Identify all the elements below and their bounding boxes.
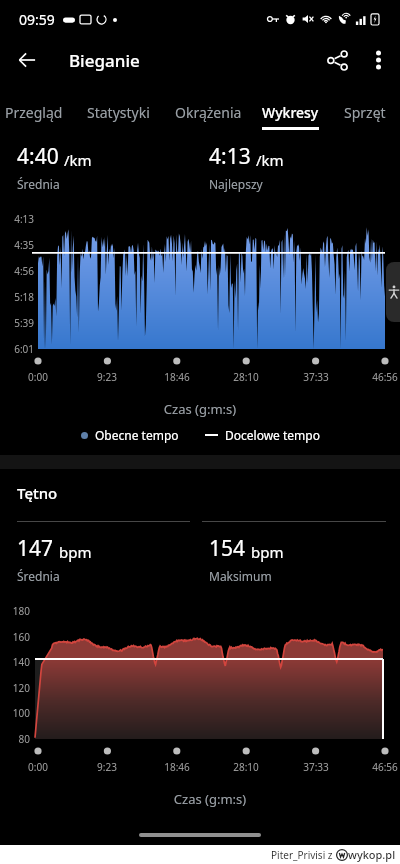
button[interactable]: Share (315, 38, 359, 82)
staticText: 46:56 (361, 370, 400, 384)
staticText: 28:10 (222, 370, 270, 384)
staticText: 0:00 (14, 760, 62, 774)
staticText: Średnia (17, 176, 60, 192)
staticText: 4:35 (2, 238, 34, 252)
staticText: 0:00 (14, 370, 62, 384)
staticText: Czas (g:m:s) (20, 790, 400, 808)
staticText: Wykresy (262, 103, 319, 122)
staticText: Sprzęt (344, 103, 386, 122)
staticText: Najlepszy (209, 176, 263, 192)
staticText: 46:56 (361, 760, 400, 774)
staticText: 9:23 (83, 370, 131, 384)
staticText: Średnia (17, 568, 60, 584)
staticText: Docelowe tempo (225, 427, 320, 443)
staticText: 180 (0, 604, 30, 618)
staticText: /km (256, 150, 284, 170)
button[interactable]: Accessibility (386, 262, 400, 322)
staticText: Czas (g:m:s) (0, 400, 400, 418)
staticText: bpm (59, 542, 92, 562)
staticText: 4:56 (2, 264, 34, 278)
staticText: 154 (209, 534, 246, 563)
staticText: Obecne tempo (95, 427, 179, 443)
staticText: Bieganie (69, 49, 140, 72)
staticText: 37:33 (292, 370, 340, 384)
staticText: 37:33 (292, 760, 340, 774)
staticText: 100 (0, 706, 30, 720)
button[interactable]: Statystyki (76, 94, 160, 130)
button[interactable]: More options (356, 38, 400, 82)
staticText: 09:59 (19, 10, 55, 29)
staticText: bpm (251, 542, 284, 562)
staticText: 4:13 (209, 142, 251, 171)
staticText: 120 (0, 681, 30, 695)
staticText: 147 (17, 534, 54, 563)
staticText: 9:23 (83, 760, 131, 774)
staticText: Tętno (17, 483, 58, 503)
button[interactable]: Przegląd (0, 94, 72, 130)
staticText: 80 (0, 732, 30, 746)
staticText: 140 (0, 655, 30, 669)
button[interactable]: Back (0, 36, 54, 84)
staticText: 160 (0, 630, 30, 644)
staticText: 4:40 (17, 142, 59, 171)
staticText: Maksimum (209, 568, 272, 584)
button[interactable]: Wykresy (253, 94, 328, 130)
staticText: Przegląd (5, 103, 63, 122)
button[interactable]: Sprzęt (334, 94, 395, 130)
staticText: Okrążenia (175, 103, 242, 122)
staticText: Statystyki (87, 103, 150, 122)
staticText: Piter_Privisi z (271, 848, 336, 862)
staticText: wykop.pl (348, 847, 396, 862)
button[interactable]: Okrążenia (166, 94, 250, 130)
staticText: 6:01 (2, 342, 34, 356)
staticText: 5:18 (2, 290, 34, 304)
staticText: 28:10 (222, 760, 270, 774)
staticText: 5:39 (2, 316, 34, 330)
staticText: /km (64, 150, 92, 170)
staticText: 18:46 (153, 370, 201, 384)
staticText: 4:13 (2, 212, 34, 226)
staticText: 18:46 (153, 760, 201, 774)
